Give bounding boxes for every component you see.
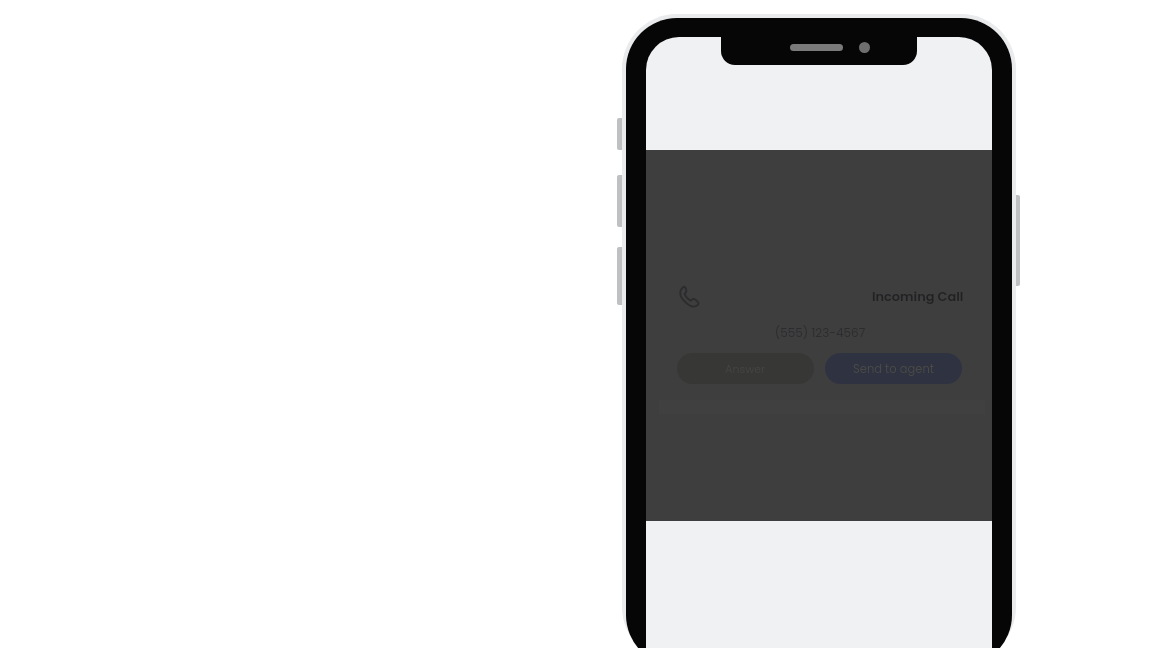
staticText: Answer (725, 361, 766, 376)
staticText: Incoming Call (872, 287, 964, 305)
staticText: Send to agent (853, 361, 934, 377)
button[interactable]: Incoming call (677, 284, 702, 311)
button[interactable]: Send to agent (825, 353, 962, 384)
